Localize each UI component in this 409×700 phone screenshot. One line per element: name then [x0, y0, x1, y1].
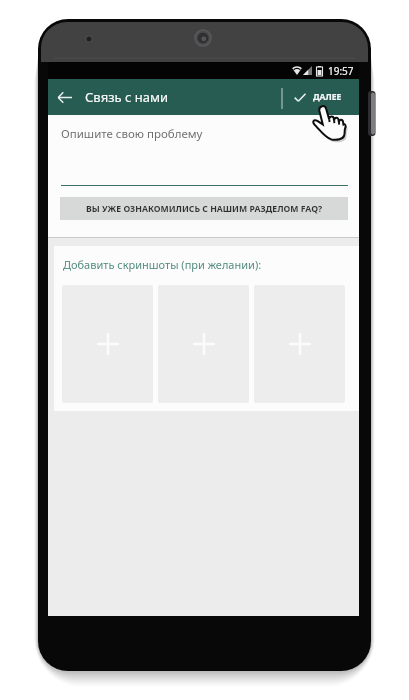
staticText: Добавить скриншоты (при желании):: [63, 257, 262, 272]
staticText: 19:57: [328, 64, 354, 78]
staticText: Опишите свою проблему: [61, 126, 203, 142]
button[interactable]: ДАЛЕЕ: [289, 79, 347, 115]
staticText: ДАЛЕЕ: [313, 91, 342, 103]
button[interactable]: Back: [46, 79, 82, 115]
staticText: Связь с нами: [85, 88, 169, 106]
staticText: ВЫ УЖЕ ОЗНАКОМИЛИСЬ С НАШИМ РАЗДЕЛОМ FAQ…: [86, 203, 323, 215]
button[interactable]: ВЫ УЖЕ ОЗНАКОМИЛИСЬ С НАШИМ РАЗДЕЛОМ FAQ…: [60, 197, 348, 220]
